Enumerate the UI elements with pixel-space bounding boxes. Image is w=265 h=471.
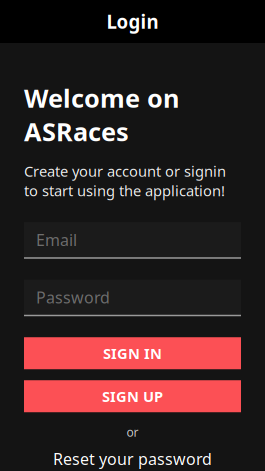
staticText: Login [106, 9, 158, 34]
button[interactable]: Reset your password [24, 448, 241, 469]
staticText: or [126, 424, 138, 440]
button[interactable]: SIGN UP [24, 380, 241, 412]
staticText: Welcome on ASRaces [24, 81, 179, 148]
staticText: SIGN UP [102, 386, 163, 406]
staticText: Password [36, 287, 110, 308]
staticText: Email [36, 229, 77, 250]
staticText: Create your account or signin to start u… [24, 161, 226, 200]
staticText: SIGN IN [103, 343, 162, 363]
button[interactable]: SIGN IN [24, 337, 241, 369]
staticText: Reset your password [53, 448, 212, 469]
